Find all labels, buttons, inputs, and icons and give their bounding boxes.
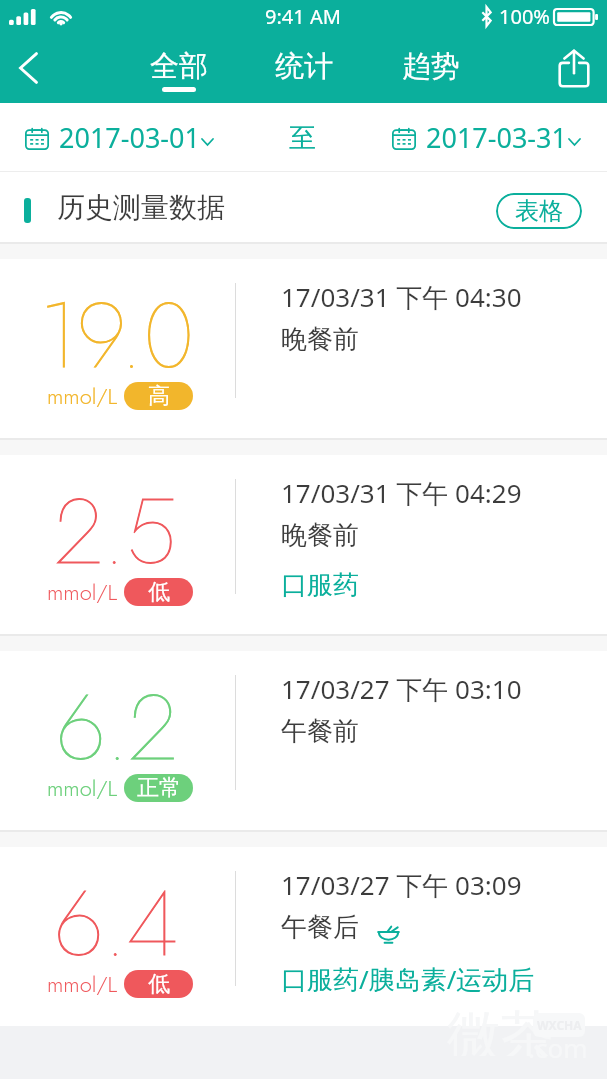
staticText: mmol/L	[47, 968, 118, 1000]
staticText: mmol/L	[47, 772, 118, 804]
staticText: 午餐后	[281, 911, 359, 944]
button[interactable]: 2.5	[0, 455, 607, 634]
button[interactable]: Share	[544, 36, 607, 103]
button[interactable]: 2017-03-01	[25, 119, 213, 156]
staticText: 口服药/胰岛素/运动后	[281, 961, 535, 997]
staticText: 17/03/27 下午 03:09	[281, 867, 522, 903]
staticText: WXCHA	[537, 1017, 582, 1033]
staticText: 趋势	[402, 48, 460, 85]
staticText: 午餐前	[281, 715, 359, 748]
button[interactable]: 趋势	[379, 36, 483, 103]
button[interactable]: 6.2	[0, 651, 607, 830]
staticText: 17/03/31 下午 04:29	[281, 475, 522, 511]
button[interactable]: 表格	[496, 193, 582, 229]
staticText: 100%	[499, 3, 550, 30]
staticText: 19.0	[39, 269, 195, 402]
staticText: 19.0	[39, 269, 195, 402]
staticText: 9:41 AM	[265, 3, 341, 30]
staticText: 2017-03-01	[59, 119, 200, 156]
staticText: 6.4	[54, 857, 179, 990]
staticText: 2.5	[55, 465, 178, 598]
staticText: 正常	[137, 774, 181, 802]
button[interactable]: 6.4	[0, 847, 607, 1026]
button[interactable]: Back	[0, 36, 57, 103]
staticText: 历史测量数据	[57, 190, 225, 225]
staticText: mmol/L	[47, 576, 118, 608]
staticText: 高	[148, 382, 170, 410]
button[interactable]: 19.0	[0, 259, 607, 438]
staticText: 17/03/27 下午 03:10	[281, 671, 522, 707]
staticText: 2.5	[55, 465, 178, 598]
staticText: 全部	[150, 48, 208, 85]
staticText: 晚餐前	[281, 323, 359, 356]
staticText: 低	[148, 578, 170, 606]
staticText: 晚餐前	[281, 519, 359, 552]
staticText: 至	[289, 121, 316, 155]
staticText: 口服药	[281, 569, 359, 602]
staticText: 6.4	[54, 857, 179, 990]
staticText: 17/03/31 下午 04:30	[281, 279, 522, 315]
staticText: 6.2	[56, 661, 177, 794]
staticText: 6.2	[56, 661, 177, 794]
staticText: mmol/L	[47, 380, 118, 412]
button[interactable]: 统计	[252, 36, 356, 103]
staticText: 表格	[515, 196, 563, 226]
staticText: 微茶	[447, 1003, 555, 1056]
staticText: 统计	[275, 48, 333, 85]
button[interactable]: 全部	[127, 36, 231, 103]
staticText: 低	[148, 970, 170, 998]
staticText: 2017-03-31	[426, 119, 567, 156]
button[interactable]: 2017-03-31	[392, 119, 580, 156]
